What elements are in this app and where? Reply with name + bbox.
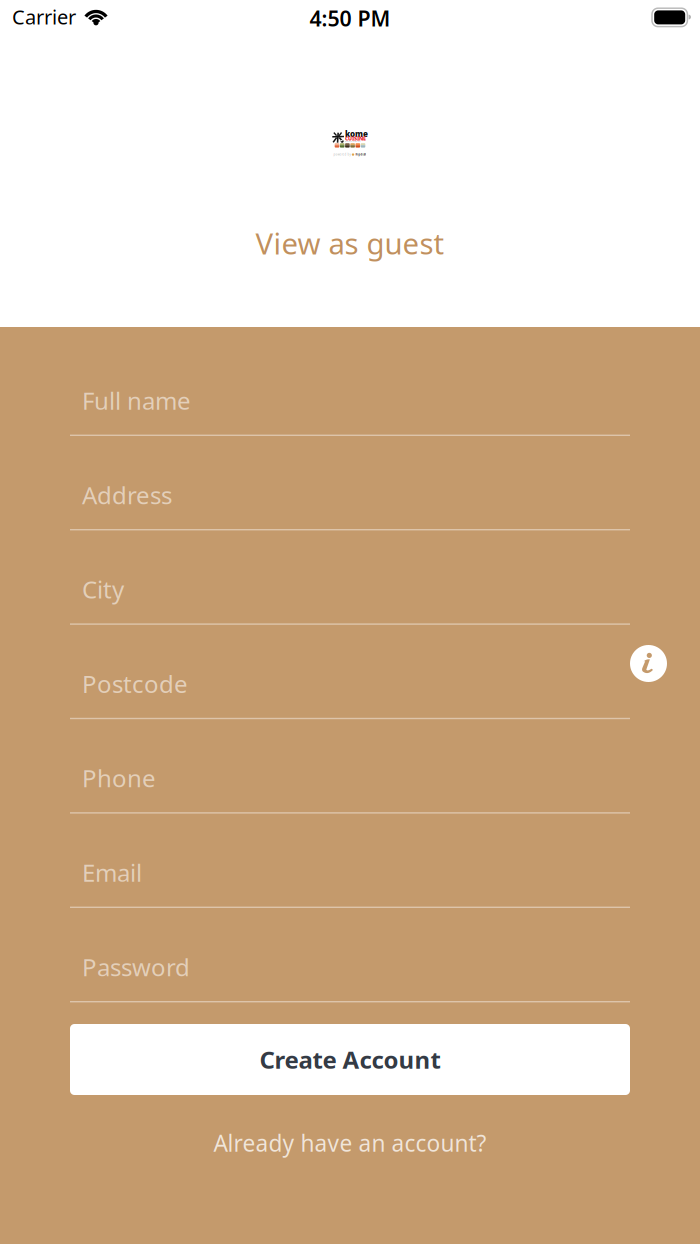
staticText: Flipdish bbox=[355, 153, 366, 156]
staticText: CUISINE bbox=[345, 135, 366, 142]
staticText: Phone bbox=[82, 762, 156, 794]
button[interactable]: Already have an account? bbox=[0, 1126, 700, 1160]
staticText: japanese restaurant bbox=[345, 140, 360, 142]
staticText: Create Account bbox=[259, 1044, 440, 1075]
button[interactable]: Postcode bbox=[70, 675, 630, 719]
staticText: Postcode bbox=[82, 668, 188, 700]
staticText: Email bbox=[82, 856, 142, 888]
button[interactable]: Address bbox=[70, 486, 630, 530]
staticText: powered by bbox=[334, 153, 351, 156]
button[interactable]: Password bbox=[70, 958, 630, 1002]
button[interactable]: City bbox=[70, 580, 630, 625]
staticText: City bbox=[82, 573, 124, 605]
staticText: Full name bbox=[82, 384, 191, 416]
staticText: 4:50 PM bbox=[309, 4, 390, 32]
staticText: kome bbox=[345, 129, 368, 139]
button[interactable]: Information bbox=[630, 645, 667, 682]
staticText: Password bbox=[82, 951, 190, 983]
button[interactable]: Full name bbox=[70, 391, 630, 436]
staticText: View as guest bbox=[255, 223, 444, 262]
button[interactable]: Phone bbox=[70, 769, 630, 814]
staticText: Address bbox=[82, 479, 172, 511]
staticText: Carrier bbox=[12, 3, 76, 30]
staticText: Already have an account? bbox=[213, 1128, 486, 1158]
button[interactable]: Create Account bbox=[70, 1024, 630, 1095]
button[interactable]: View as guest bbox=[0, 221, 700, 265]
button[interactable]: Email bbox=[70, 863, 630, 908]
